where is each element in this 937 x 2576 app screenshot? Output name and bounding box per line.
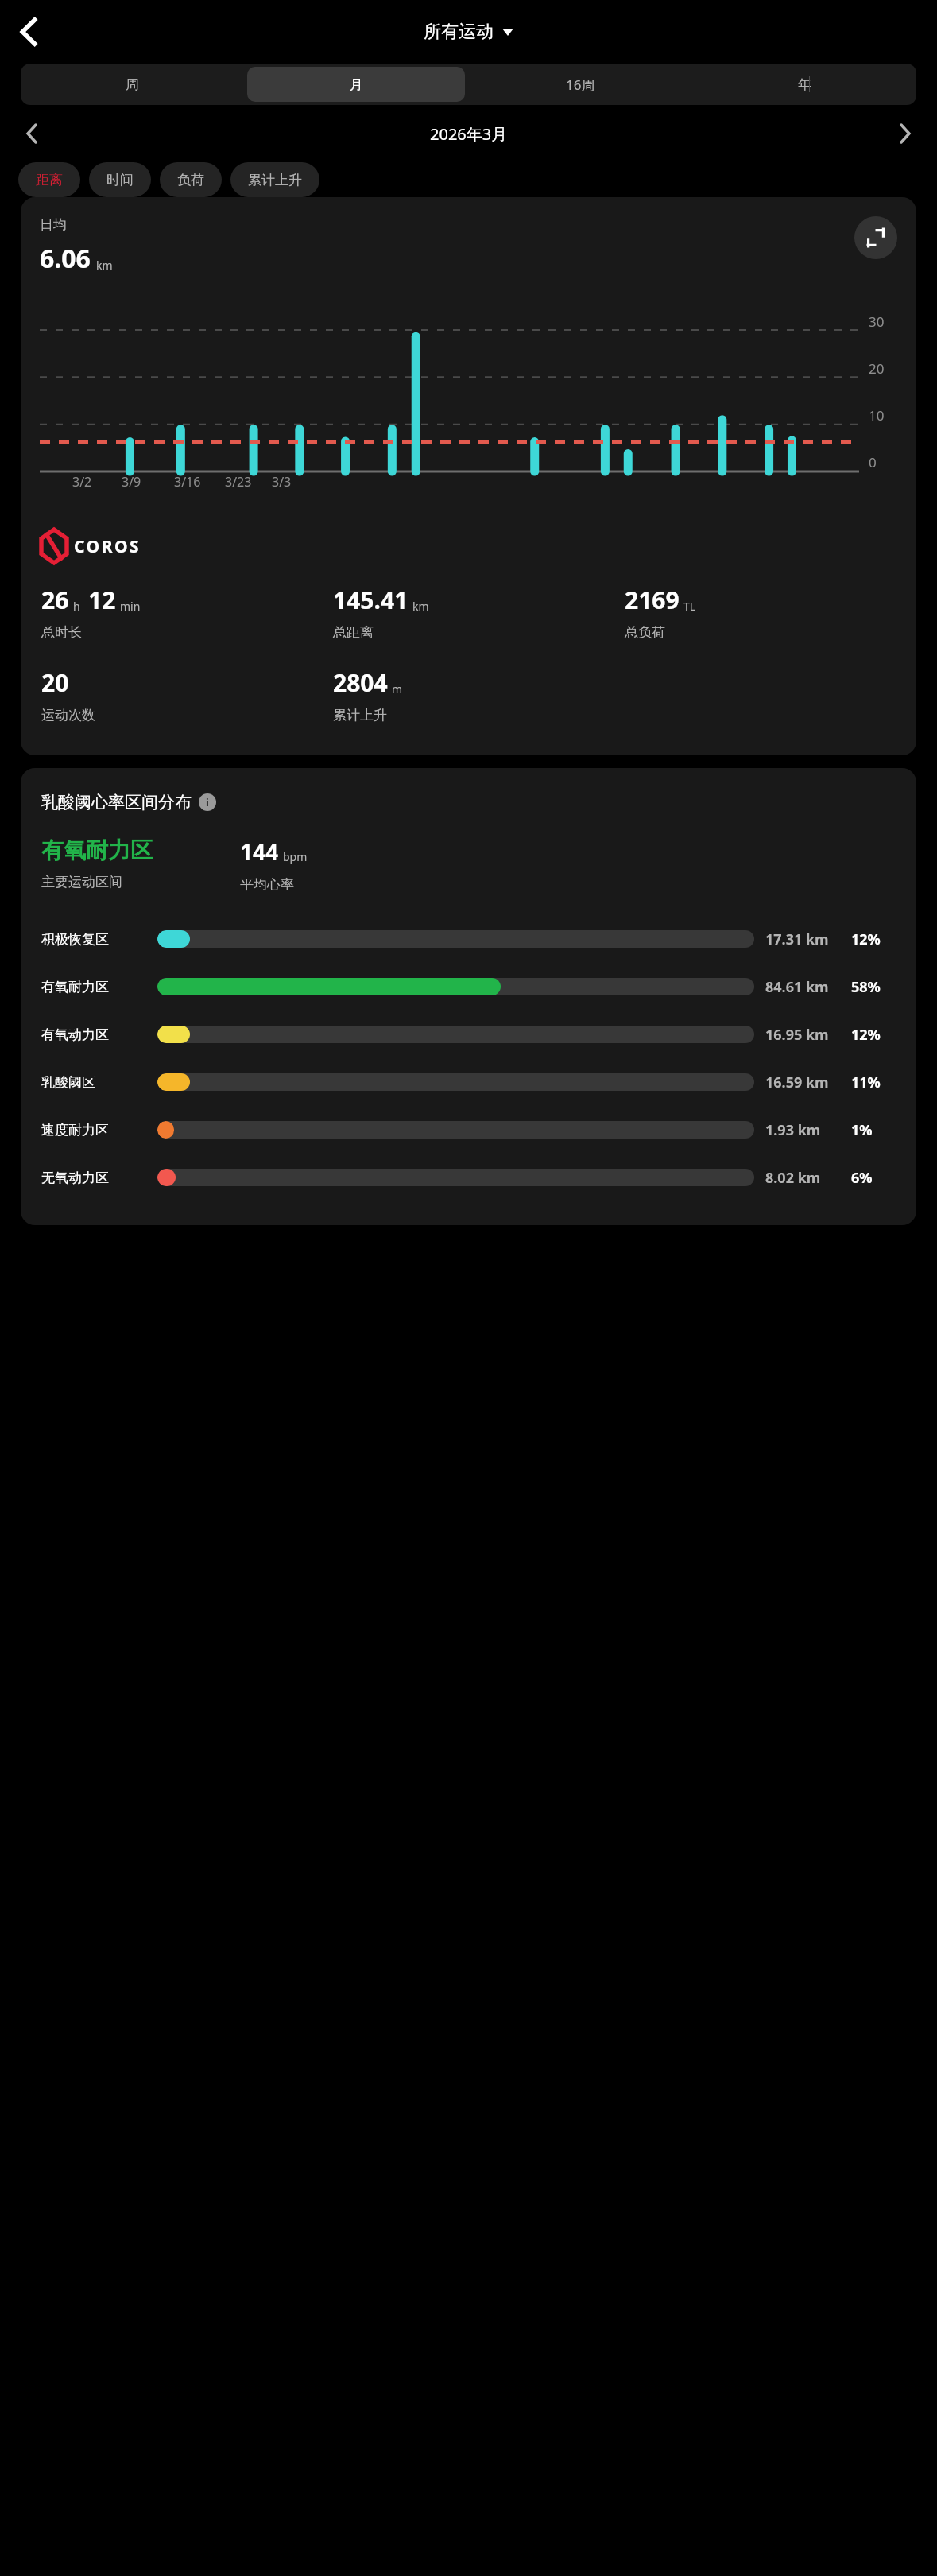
staticText: 负荷	[177, 172, 204, 188]
staticText: 3/9	[122, 473, 141, 491]
staticText: 6%	[851, 1168, 897, 1188]
staticText: 2169	[625, 584, 680, 616]
staticText: 运动次数	[41, 707, 95, 724]
staticText: km	[412, 599, 429, 614]
button[interactable]: 下个月	[885, 113, 926, 154]
button[interactable]: 返回	[5, 8, 52, 56]
button[interactable]: 年	[695, 67, 913, 102]
button[interactable]: 16周	[471, 67, 689, 102]
staticText: 20	[869, 359, 885, 378]
staticText: h	[73, 599, 80, 614]
staticText: i	[206, 795, 209, 809]
staticText: 0	[869, 453, 877, 471]
staticText: 16周	[566, 76, 595, 94]
staticText: 11%	[851, 1073, 897, 1092]
staticText: 有氧耐力区	[41, 979, 148, 995]
staticText: 10	[869, 406, 885, 425]
staticText: 周	[126, 76, 139, 93]
staticText: 乳酸阈心率区间分布	[41, 792, 192, 813]
staticText: 时间	[106, 172, 134, 188]
staticText: 20	[41, 666, 69, 699]
staticText: 16.59 km	[765, 1073, 851, 1092]
staticText: 58%	[851, 977, 897, 997]
staticText: m	[392, 681, 403, 696]
staticText: 主要运动区间	[41, 874, 122, 890]
staticText: 月	[350, 76, 363, 93]
staticText: 2026年3月	[430, 123, 508, 145]
staticText: 日均	[40, 216, 67, 233]
staticText: 30	[869, 312, 885, 331]
staticText: km	[96, 258, 113, 273]
staticText: 3/2	[72, 473, 92, 491]
button[interactable]: 上个月	[11, 113, 52, 154]
staticText: 2804	[333, 666, 388, 699]
staticText: 8.02 km	[765, 1168, 851, 1188]
button[interactable]: 所有运动	[424, 21, 513, 43]
staticText: 累计上升	[333, 707, 387, 724]
button[interactable]: 有氧耐力区	[41, 968, 897, 1006]
staticText: 1%	[851, 1120, 897, 1140]
staticText: 无氧动力区	[41, 1170, 148, 1186]
button[interactable]: 速度耐力区	[41, 1111, 897, 1149]
staticText: 积极恢复区	[41, 931, 148, 948]
staticText: 3/23	[225, 473, 252, 491]
staticText: 有氧动力区	[41, 1026, 148, 1043]
staticText: 84.61 km	[765, 977, 851, 997]
staticText: 累计上升	[248, 172, 302, 188]
staticText: 速度耐力区	[41, 1122, 148, 1139]
button[interactable]: 累计上升	[230, 162, 319, 197]
button[interactable]: 月	[247, 67, 465, 102]
staticText: COROS	[74, 535, 141, 558]
staticText: 距离	[36, 172, 63, 188]
button[interactable]: 距离	[18, 162, 80, 197]
staticText: 乳酸阈区	[41, 1074, 148, 1091]
staticText: 3/3	[272, 473, 292, 491]
staticText: 3/16	[174, 473, 201, 491]
button[interactable]: 全屏	[854, 216, 897, 259]
button[interactable]: 积极恢复区	[41, 920, 897, 958]
staticText: 12	[88, 584, 116, 616]
other: 说明	[199, 793, 216, 811]
staticText: 144	[240, 836, 279, 867]
staticText: 年	[798, 76, 811, 93]
staticText: 总负荷	[625, 624, 665, 641]
staticText: 1.93 km	[765, 1120, 851, 1140]
staticText: 总时长	[41, 624, 82, 641]
staticText: 有氧耐力区	[41, 836, 153, 864]
staticText: 16.95 km	[765, 1025, 851, 1045]
button[interactable]: 无氧动力区	[41, 1158, 897, 1197]
staticText: TL	[683, 599, 696, 614]
staticText: 总距离	[333, 624, 374, 641]
button[interactable]: 乳酸阈心率区间分布	[41, 792, 216, 813]
staticText: bpm	[283, 849, 308, 864]
staticText: 12%	[851, 929, 897, 949]
staticText: 6.06	[40, 241, 91, 276]
button[interactable]: 周	[24, 67, 241, 102]
staticText: 26	[41, 584, 69, 616]
button[interactable]: 有氧动力区	[41, 1015, 897, 1053]
staticText: min	[120, 599, 141, 614]
button[interactable]: 乳酸阈区	[41, 1063, 897, 1101]
staticText: 所有运动	[424, 21, 494, 43]
button[interactable]: 时间	[89, 162, 151, 197]
staticText: 平均心率	[240, 876, 294, 893]
staticText: 17.31 km	[765, 929, 851, 949]
button[interactable]: 负荷	[160, 162, 222, 197]
staticText: 145.41	[333, 584, 408, 616]
staticText: 12%	[851, 1025, 897, 1045]
